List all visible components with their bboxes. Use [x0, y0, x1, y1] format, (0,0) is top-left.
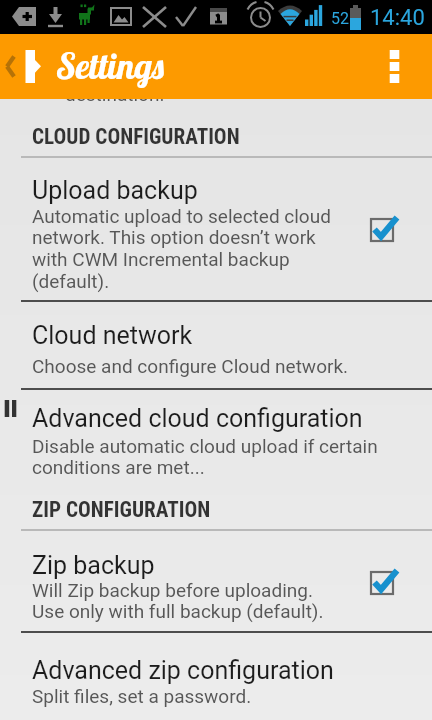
staticText: ZIP CONFIGURATION	[32, 497, 211, 522]
staticText: Disable automatic cloud upload if certai…	[32, 435, 378, 479]
button[interactable]: Advanced zip configuration	[0, 633, 432, 720]
staticText: Cloud network	[32, 321, 193, 350]
staticText: Zip backup	[32, 551, 155, 580]
staticText: Split files, set a password.	[32, 685, 252, 707]
staticText: 52	[331, 9, 349, 28]
button[interactable]: Upload backup	[0, 158, 432, 301]
staticText: CLOUD CONFIGURATION	[32, 124, 240, 149]
staticText: destination.	[65, 83, 165, 105]
staticText: Choose and configure Cloud network.	[32, 355, 349, 377]
staticText: Automatic upload to selected cloud netwo…	[32, 205, 331, 293]
staticText: Upload backup	[32, 176, 198, 205]
button[interactable]: More options	[382, 34, 432, 99]
staticText: 14:40	[370, 5, 425, 31]
staticText: Settings	[57, 44, 166, 88]
staticText: Advanced cloud configuration	[32, 404, 363, 433]
button[interactable]: Cloud network	[0, 302, 432, 388]
button[interactable]: Advanced cloud configuration	[0, 390, 432, 490]
staticText: Will Zip backup before uploading. Use on…	[32, 579, 324, 623]
button[interactable]: Zip backup	[0, 531, 432, 631]
staticText: Advanced zip configuration	[32, 656, 334, 685]
button[interactable]: Navigate up	[0, 34, 48, 99]
